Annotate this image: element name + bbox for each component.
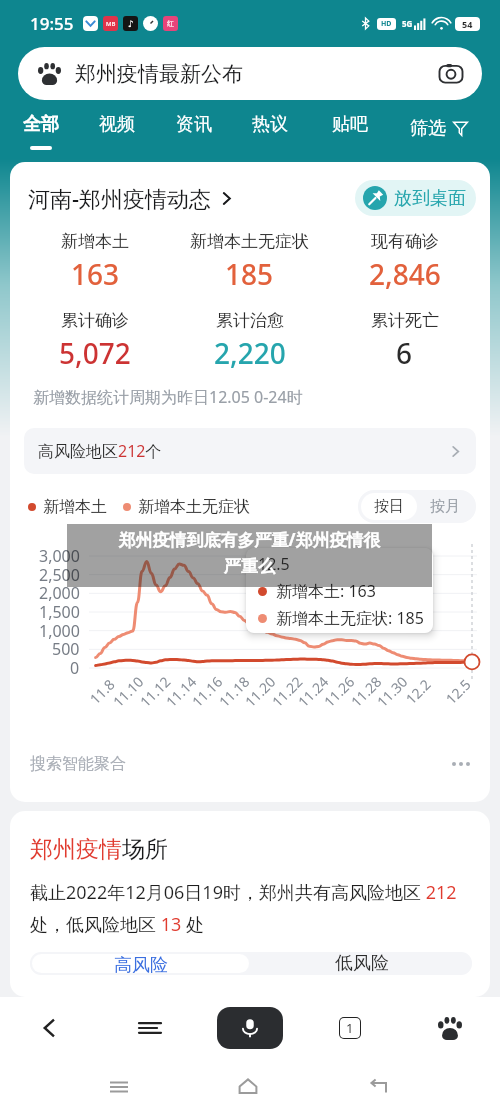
staticText: 全部 bbox=[23, 113, 59, 136]
button[interactable]: More options bbox=[452, 762, 470, 766]
staticText: 11.26 bbox=[320, 672, 358, 711]
button[interactable]: 全部 bbox=[13, 100, 69, 154]
staticText: 高风险地区212个 bbox=[38, 440, 162, 462]
staticText: 低风险 bbox=[335, 952, 389, 975]
staticText: 累计确诊 bbox=[61, 310, 129, 331]
staticText: 11.10 bbox=[109, 672, 147, 711]
staticText: 新增本土: 163 bbox=[276, 580, 376, 602]
staticText: 11.12 bbox=[136, 672, 174, 711]
button[interactable]: 现有确诊 bbox=[327, 231, 482, 293]
staticText: 185 bbox=[225, 255, 274, 293]
staticText: 54 bbox=[462, 18, 473, 30]
staticText: 按日 bbox=[374, 497, 404, 516]
staticText: 6 bbox=[396, 334, 413, 372]
staticText: 河南-郑州疫情动态 bbox=[28, 183, 212, 213]
staticText: 现有确诊 bbox=[371, 231, 439, 252]
staticText: 高风险 bbox=[114, 954, 168, 973]
staticText: 贴吧 bbox=[332, 113, 368, 136]
staticText: 5G bbox=[402, 18, 413, 29]
staticText: 11.18 bbox=[215, 672, 253, 711]
button[interactable]: Tabs bbox=[300, 997, 400, 1059]
button[interactable]: 新增本土 bbox=[18, 231, 172, 293]
button[interactable]: Voice search bbox=[217, 1007, 283, 1049]
button[interactable]: 新增本土无症状 bbox=[172, 231, 327, 293]
staticText: 2,846 bbox=[369, 255, 441, 293]
staticText: 0 bbox=[70, 657, 80, 679]
button[interactable]: 低风险 bbox=[251, 952, 472, 975]
staticText: 2,500 bbox=[39, 564, 80, 586]
staticText: 19:55 bbox=[30, 12, 74, 35]
staticText: 500 bbox=[52, 638, 80, 660]
button[interactable]: 郑州疫情最新公布 bbox=[18, 47, 482, 100]
staticText: 新增本土无症状: 185 bbox=[276, 607, 424, 629]
button[interactable]: 累计治愈 bbox=[172, 310, 327, 372]
staticText: 新增本土 bbox=[43, 497, 107, 517]
staticText: 1,000 bbox=[39, 620, 80, 642]
button[interactable]: 累计死亡 bbox=[327, 310, 482, 372]
staticText: 11.28 bbox=[347, 672, 385, 711]
button[interactable]: 筛选 bbox=[408, 115, 470, 142]
button[interactable]: 热议 bbox=[242, 100, 298, 154]
staticText: 累计死亡 bbox=[371, 310, 439, 331]
button[interactable]: 高风险地区212个 bbox=[24, 428, 476, 474]
staticText: 截止2022年12月06日19时，郑州共有高风险地区 212 处，低风险地区 1… bbox=[30, 880, 472, 936]
staticText: 红 bbox=[167, 19, 174, 28]
staticText: 5,072 bbox=[59, 334, 131, 372]
staticText: 1 bbox=[346, 1019, 354, 1037]
button[interactable]: Menu bbox=[100, 997, 200, 1059]
staticText: 新增本土无症状 bbox=[190, 231, 309, 252]
button[interactable]: 视频 bbox=[89, 100, 145, 154]
staticText: 12.5 bbox=[441, 675, 475, 708]
staticText: 放到桌面 bbox=[394, 187, 466, 210]
staticText: 郑州疫情到底有多严重/郑州疫情很 严重么 bbox=[118, 528, 381, 577]
button[interactable]: 贴吧 bbox=[322, 100, 378, 154]
button[interactable]: Camera search bbox=[437, 60, 464, 87]
staticText: HD bbox=[381, 19, 392, 29]
staticText: 12.2 bbox=[401, 675, 435, 708]
button[interactable]: 按月 bbox=[417, 493, 473, 520]
staticText: 11.24 bbox=[294, 672, 332, 711]
staticText: 累计治愈 bbox=[216, 310, 284, 331]
staticText: 11.30 bbox=[373, 672, 411, 711]
staticText: 11.20 bbox=[241, 672, 279, 711]
staticText: 2,220 bbox=[214, 334, 286, 372]
button[interactable]: 按日 bbox=[361, 493, 417, 520]
staticText: 郑州疫情最新公布 bbox=[75, 61, 243, 87]
staticText: 资讯 bbox=[176, 113, 212, 136]
staticText: 视频 bbox=[99, 113, 135, 136]
button[interactable]: Back bbox=[0, 997, 100, 1059]
staticText: 11.16 bbox=[188, 672, 226, 711]
staticText: 新增本土 bbox=[61, 231, 129, 252]
button[interactable]: 累计确诊 bbox=[18, 310, 172, 372]
staticText: 163 bbox=[71, 255, 120, 293]
staticText: 热议 bbox=[252, 113, 288, 136]
staticText: ♪ bbox=[128, 19, 134, 29]
staticText: 搜索智能聚合 bbox=[30, 754, 126, 774]
staticText: 3,000 bbox=[39, 545, 80, 567]
staticText: 筛选 bbox=[410, 117, 446, 140]
button[interactable]: Profile bbox=[400, 997, 500, 1059]
staticText: 按月 bbox=[430, 497, 460, 516]
button[interactable]: 高风险 bbox=[32, 954, 249, 973]
staticText: MB bbox=[106, 20, 116, 28]
staticText: 11.22 bbox=[268, 672, 306, 711]
staticText: 2,000 bbox=[39, 582, 80, 604]
staticText: 12.5 bbox=[258, 553, 290, 575]
staticText: 郑州疫情场所 bbox=[30, 835, 168, 864]
staticText: 新增数据统计周期为昨日12.05 0-24时 bbox=[33, 386, 303, 408]
staticText: 新增本土无症状 bbox=[138, 497, 250, 517]
staticText: 1,500 bbox=[39, 601, 80, 623]
button[interactable]: 河南-郑州疫情动态 bbox=[28, 183, 234, 213]
button[interactable]: 资讯 bbox=[166, 100, 222, 154]
staticText: 11.14 bbox=[162, 672, 200, 711]
button[interactable]: 放到桌面 bbox=[355, 180, 476, 216]
staticText: 11.8 bbox=[85, 675, 119, 708]
